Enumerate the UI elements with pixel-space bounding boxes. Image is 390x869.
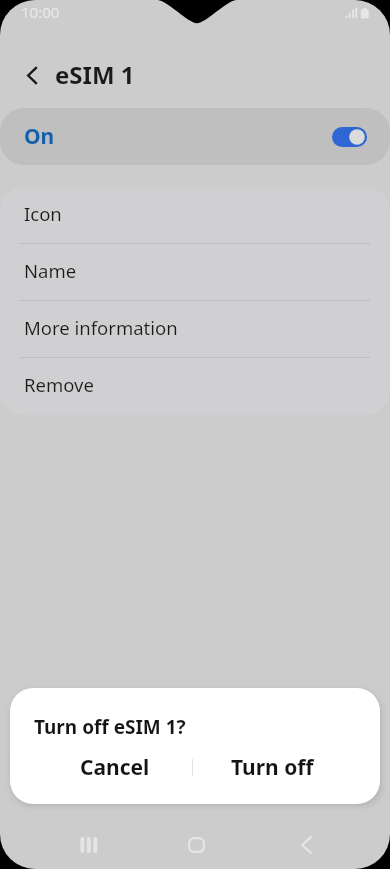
button[interactable]: Icon [0,187,390,244]
staticText: Turn off eSIM 1? [34,714,186,740]
staticText: Icon [24,201,62,226]
staticText: Turn off [231,753,314,782]
staticText: eSIM 1 [55,58,135,91]
staticText: On [24,122,55,151]
button[interactable]: Remove [0,358,390,415]
button[interactable]: Recent apps [64,823,112,867]
button[interactable]: Home [172,823,220,867]
staticText: Name [24,258,77,283]
button[interactable]: On [0,108,390,165]
button[interactable]: Cancel [38,747,192,787]
button[interactable]: Name [0,244,390,301]
staticText: 10:00 [21,2,60,22]
staticText: More information [24,315,178,340]
button[interactable]: Turn off [193,747,352,787]
button[interactable]: Back [19,62,45,88]
button[interactable]: Back [282,823,330,867]
staticText: Cancel [80,753,150,782]
staticText: Remove [24,372,94,397]
button[interactable]: More information [0,301,390,358]
